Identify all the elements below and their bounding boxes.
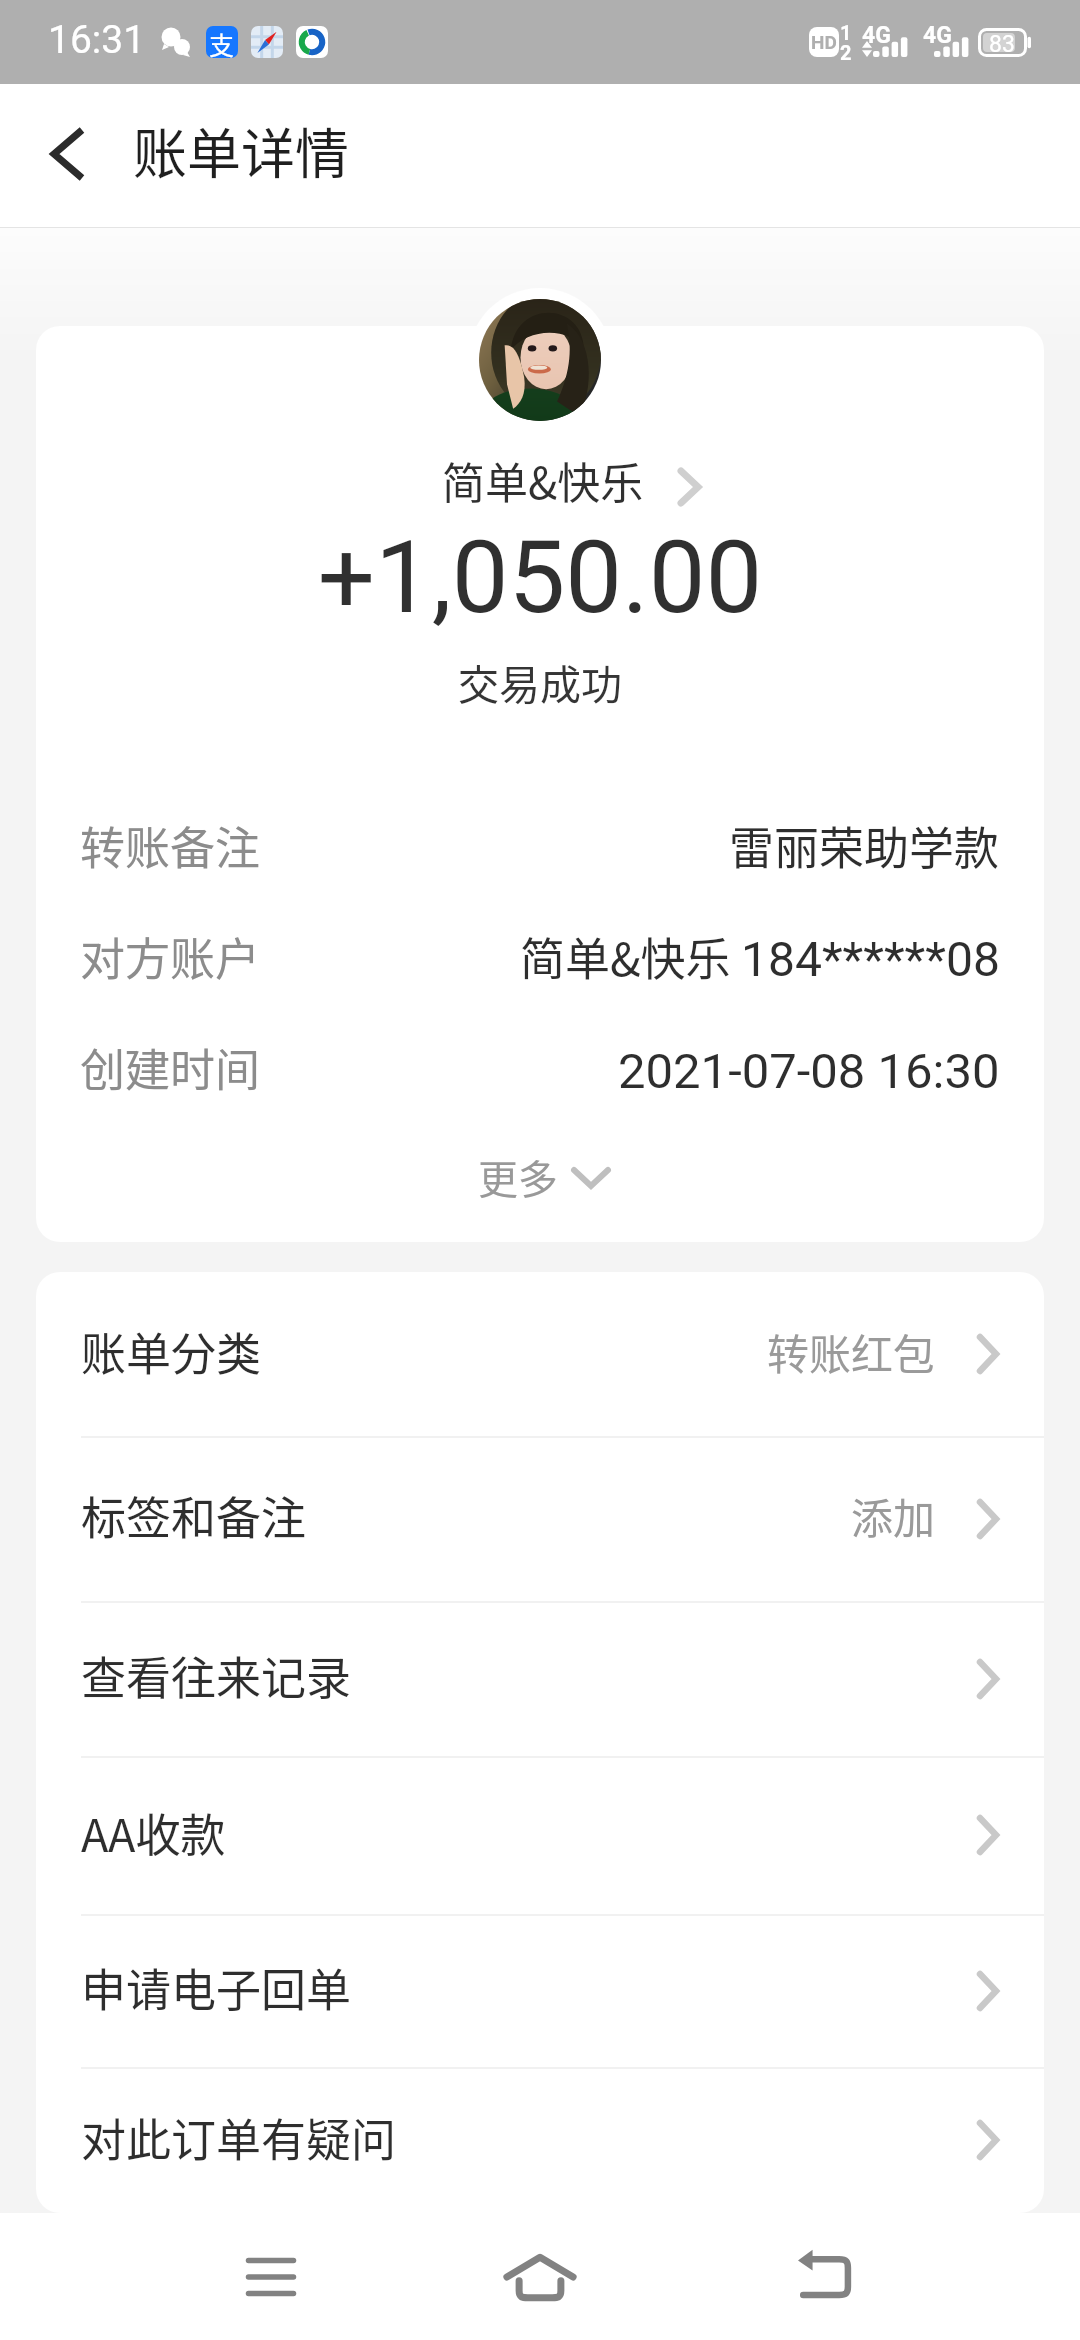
staticText: 简单&快乐 <box>442 449 644 511</box>
button[interactable]: 账单分类 <box>36 1272 1044 1436</box>
button[interactable]: Back <box>734 2213 914 2340</box>
staticText: 2021-07-08 16:30 <box>618 1043 1000 1100</box>
button[interactable]: 标签和备注 <box>36 1436 1044 1601</box>
staticText: 支 <box>209 26 235 58</box>
staticText: 4G <box>862 22 891 49</box>
staticText: HD <box>811 31 837 53</box>
button[interactable]: 对此订单有疑问 <box>36 2067 1044 2213</box>
button[interactable]: 简单&快乐 <box>406 453 776 515</box>
button[interactable]: 查看往来记录 <box>36 1601 1044 1756</box>
button[interactable]: Profile photo <box>468 288 612 432</box>
staticText: AA收款 <box>81 1800 226 1865</box>
staticText: 184******08 <box>741 931 1000 987</box>
staticText: 账单分类 <box>81 1319 262 1384</box>
staticText: 更多 <box>478 1148 558 1206</box>
staticText: 对此订单有疑问 <box>81 2105 397 2170</box>
staticText: 转账红包 <box>767 1321 936 1382</box>
staticText: 83 <box>989 31 1015 58</box>
staticText: 16:31 <box>48 17 146 63</box>
staticText: +1,050.00 <box>36 518 1044 636</box>
button[interactable]: Recent apps <box>181 2213 361 2340</box>
staticText: 账单详情 <box>133 111 349 189</box>
staticText: 转账备注 <box>80 813 261 878</box>
button[interactable]: Back <box>20 106 116 202</box>
button[interactable]: AA收款 <box>36 1756 1044 1914</box>
staticText: 2 <box>840 41 852 64</box>
staticText: 雷丽荣助学款 <box>729 813 1000 878</box>
staticText: 创建时间 <box>80 1035 261 1100</box>
staticText: 4G <box>923 22 952 49</box>
staticText: 对方账户 <box>80 924 261 989</box>
staticText: 简单&快乐 <box>520 924 741 989</box>
staticText: 标签和备注 <box>81 1483 307 1548</box>
button[interactable]: 更多 <box>416 1142 676 1214</box>
staticText: 申请电子回单 <box>81 1955 352 2020</box>
staticText: 交易成功 <box>36 652 1044 711</box>
staticText: 1 <box>840 21 852 44</box>
button[interactable]: Home <box>450 2213 630 2340</box>
staticText: 添加 <box>851 1485 936 1546</box>
staticText: 查看往来记录 <box>81 1643 352 1708</box>
button[interactable]: 申请电子回单 <box>36 1914 1044 2067</box>
